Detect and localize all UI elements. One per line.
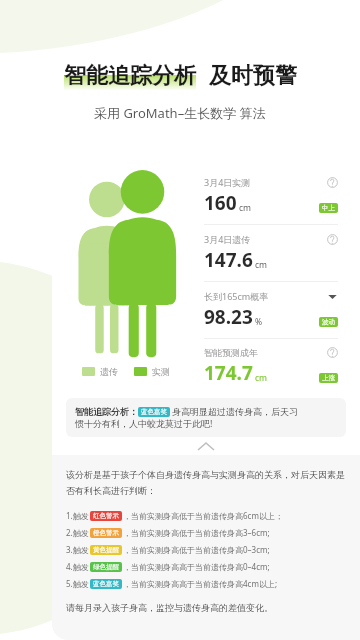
staticText: 174.7 — [204, 360, 253, 386]
staticText: 上涨 — [322, 374, 335, 382]
staticText: 5.触发 — [66, 578, 89, 589]
button[interactable]: 智能预测成年 — [204, 338, 338, 394]
staticText: 蓝色嘉奖 — [141, 408, 167, 416]
button[interactable]: 长到165cm概率 — [204, 281, 338, 338]
staticText: 采用 GroMath–生长数学 算法 — [94, 104, 266, 122]
staticText: 2.触发 — [66, 527, 89, 538]
staticText: 3.触发 — [66, 544, 89, 555]
staticText: ，当前实测身高低于当前遗传身高0–3cm; — [123, 544, 270, 555]
button[interactable]: 收起 — [52, 437, 360, 455]
staticText: 98.23 — [204, 304, 253, 330]
staticText: 160 — [204, 190, 237, 216]
staticText: 1.触发 — [66, 510, 89, 521]
button[interactable]: 帮助说明 — [327, 234, 338, 245]
staticText: 3月4日遗传 — [204, 233, 327, 245]
staticText: % — [255, 316, 263, 328]
staticText: 身高明显超过遗传身高，后天习 — [172, 406, 298, 417]
staticText: 黄色提醒 — [93, 546, 119, 554]
button[interactable]: 展开概率选项 — [327, 291, 338, 302]
button[interactable]: 3月4日遗传 — [204, 224, 338, 281]
staticText: 4.触发 — [66, 561, 89, 572]
staticText: cm — [255, 259, 268, 271]
staticText: 智能追踪分析 — [64, 62, 196, 90]
staticText: 及时预警 — [209, 62, 297, 90]
staticText: cm — [239, 202, 252, 214]
staticText: ，当前实测身高低于当前遗传身高6cm以上； — [123, 510, 283, 521]
staticText: cm — [255, 372, 268, 384]
button[interactable]: 3月4日实测 — [204, 168, 338, 224]
staticText: 绿色提醒 — [93, 563, 119, 571]
button[interactable]: 智能追踪分析： — [66, 398, 346, 437]
staticText: 惯十分有利，人中蛟龙莫过于此吧! — [75, 417, 213, 429]
staticText: 中上 — [322, 204, 335, 212]
staticText: ，当前实测身高高于当前遗传身高4cm以上; — [123, 578, 278, 589]
staticText: 蓝色嘉奖 — [93, 580, 119, 588]
staticText: 147.6 — [204, 247, 253, 273]
staticText: 波动 — [322, 318, 335, 326]
staticText: ，当前实测身高低于当前遗传身高3–6cm; — [123, 527, 270, 538]
staticText: 橙色警示 — [93, 529, 119, 537]
button[interactable]: 帮助说明 — [327, 347, 338, 358]
staticText: ，当前实测身高高于当前遗传身高0–4cm; — [123, 561, 270, 572]
button[interactable]: 帮助说明 — [327, 177, 338, 188]
staticText: 智能追踪分析： — [75, 406, 138, 417]
staticText: 实测 — [152, 366, 170, 377]
staticText: 长到165cm概率 — [204, 290, 327, 302]
staticText: 遗传 — [100, 366, 118, 377]
staticText: 该分析是基于孩子个体自身遗传身高与实测身高的关系，对后天因素是否有利长高进行判断… — [66, 469, 346, 497]
staticText: 请每月录入孩子身高，监控与遗传身高的差值变化。 — [66, 602, 273, 613]
staticText: 智能预测成年 — [204, 347, 327, 358]
staticText: 红色警示 — [93, 512, 119, 520]
staticText: 3月4日实测 — [204, 176, 327, 188]
